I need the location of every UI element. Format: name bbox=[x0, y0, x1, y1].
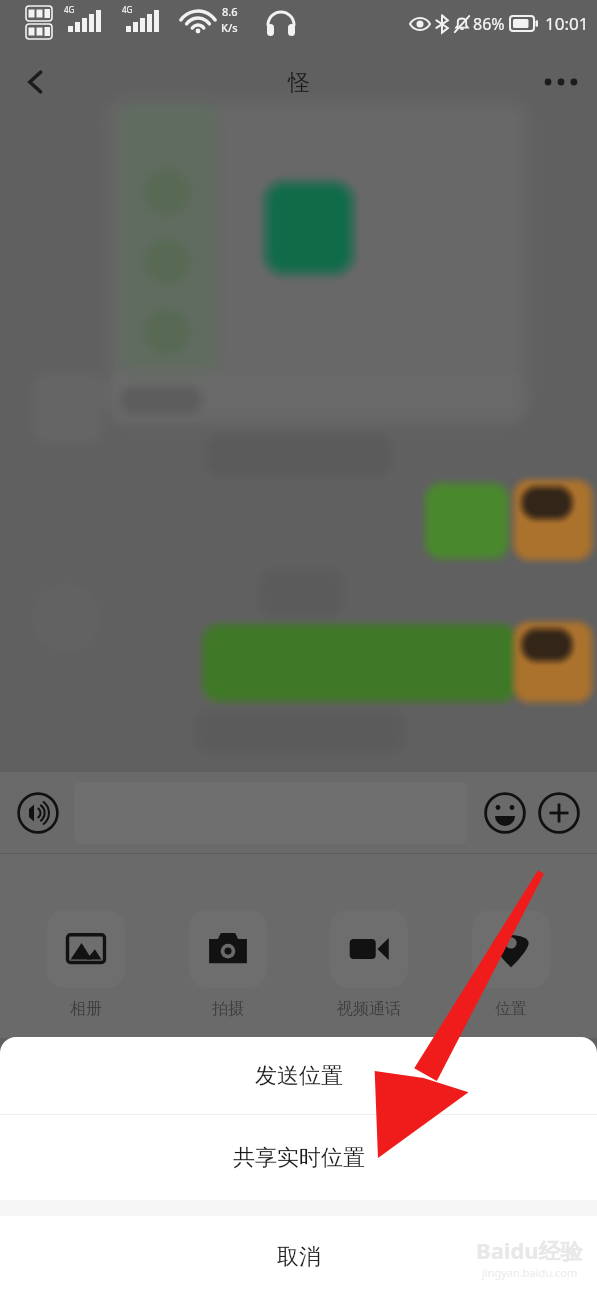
button[interactable]: Emoji bbox=[479, 787, 531, 839]
button[interactable]: Location bbox=[456, 910, 566, 1019]
staticText: 共享实时位置 bbox=[233, 1144, 365, 1172]
staticText: Baidu经验 bbox=[476, 1235, 583, 1265]
staticText: 位置 bbox=[495, 999, 527, 1019]
button[interactable]: More functions bbox=[533, 787, 585, 839]
button[interactable]: 发送位置 bbox=[0, 1037, 597, 1114]
button[interactable]: 共享实时位置 bbox=[0, 1115, 597, 1200]
staticText: 4G bbox=[64, 4, 75, 15]
button[interactable]: More options bbox=[531, 52, 591, 112]
staticText: 86% bbox=[473, 13, 505, 35]
staticText: 怪 bbox=[288, 69, 310, 97]
button[interactable]: Album bbox=[31, 910, 141, 1019]
staticText: 视频通话 bbox=[337, 999, 401, 1019]
button[interactable]: Voice input bbox=[12, 787, 64, 839]
staticText: 8.6 bbox=[222, 4, 238, 19]
staticText: K/s bbox=[221, 20, 238, 35]
button[interactable]: Video call bbox=[314, 910, 424, 1019]
staticText: jingyan.baidu.com bbox=[482, 1265, 578, 1280]
staticText: 10:01 bbox=[545, 12, 589, 35]
button[interactable]: 取消 bbox=[0, 1216, 597, 1298]
staticText: 发送位置 bbox=[255, 1062, 343, 1090]
staticText: 相册 bbox=[70, 999, 102, 1019]
staticText: 4G bbox=[122, 4, 133, 15]
staticText: 取消 bbox=[277, 1243, 321, 1271]
button[interactable]: Camera bbox=[173, 910, 283, 1019]
staticText: 拍摄 bbox=[212, 999, 244, 1019]
button[interactable]: Back bbox=[6, 52, 66, 112]
